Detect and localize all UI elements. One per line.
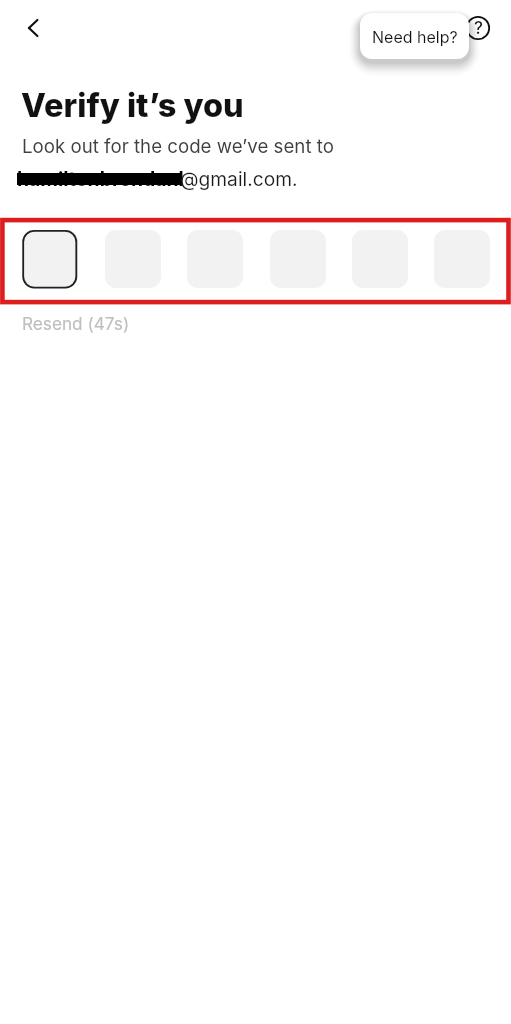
button[interactable]: Back <box>11 10 47 46</box>
button[interactable]: Digit 1 <box>22 230 78 288</box>
button[interactable]: Help <box>460 10 496 46</box>
staticText: @gmail.com. <box>180 167 298 190</box>
staticText: ? <box>474 18 483 39</box>
button[interactable]: Resend (47s) <box>22 313 130 334</box>
staticText: Look out for the code we’ve sent to <box>22 135 334 158</box>
staticText: Verify it’s you <box>21 86 244 125</box>
staticText: hamiltonbrendanl <box>17 167 184 190</box>
staticText: Need help? <box>372 27 458 46</box>
button[interactable]: Need help? <box>360 13 469 59</box>
